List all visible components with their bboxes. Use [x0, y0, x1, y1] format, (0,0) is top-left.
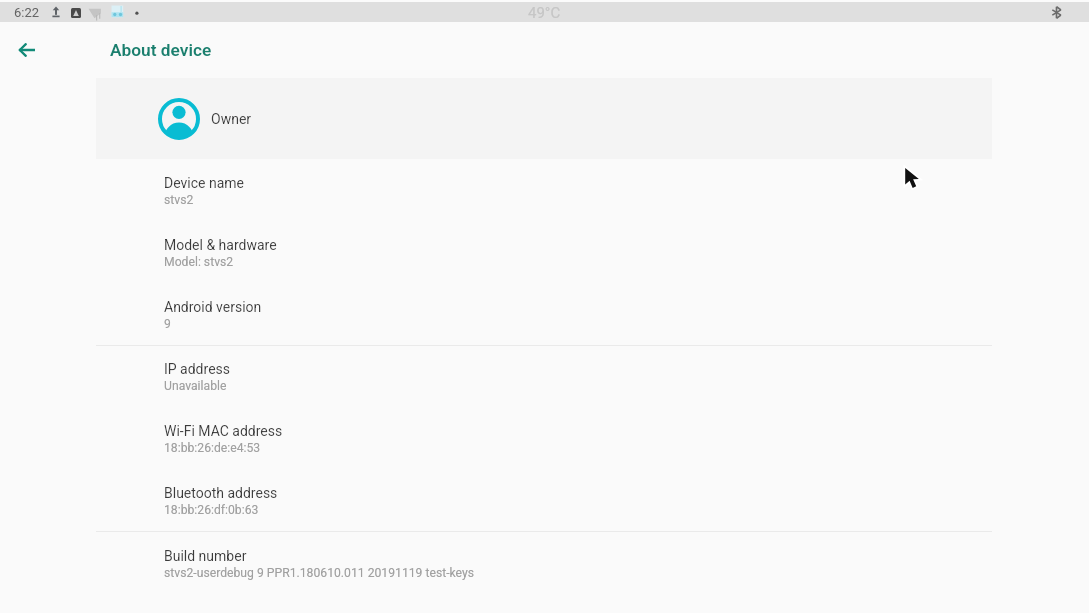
button[interactable]: Android version [96, 283, 992, 345]
staticText: 9 [164, 317, 171, 331]
staticText: Unavailable [164, 379, 227, 393]
staticText: Wi-Fi MAC address [164, 423, 283, 439]
button[interactable]: Device name [96, 159, 992, 221]
staticText: Model & hardware [164, 237, 277, 253]
button[interactable]: Navigate up [9, 32, 45, 68]
staticText: 18:bb:26:de:e4:53 [164, 441, 261, 455]
staticText: Device name [164, 175, 244, 191]
staticText: Owner [211, 111, 252, 127]
button[interactable]: IP address [96, 346, 992, 407]
staticText: About device [110, 40, 212, 60]
staticText: stvs2-userdebug 9 PPR1.180610.011 201911… [164, 566, 475, 580]
staticText: Android version [164, 299, 262, 315]
other: Bluetooth [1050, 6, 1063, 19]
staticText: 6:22 [14, 5, 40, 20]
staticText: stvs2 [164, 193, 194, 207]
staticText: Model: stvs2 [164, 255, 234, 269]
staticText: 18:bb:26:df:0b:63 [164, 503, 259, 517]
button[interactable]: Model & hardware [96, 221, 992, 283]
staticText: Bluetooth address [164, 485, 278, 501]
button[interactable]: Owner [96, 78, 992, 159]
staticText: 49°C [528, 4, 561, 22]
staticText: IP address [164, 361, 231, 377]
button[interactable]: Wi-Fi MAC address [96, 407, 992, 469]
button[interactable]: Build number [96, 532, 992, 594]
staticText: Build number [164, 548, 247, 564]
button[interactable]: Bluetooth address [96, 469, 992, 531]
